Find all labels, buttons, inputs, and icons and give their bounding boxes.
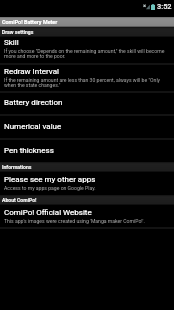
button[interactable]: Pen thickness: [0, 140, 174, 162]
staticText: Skill: [4, 38, 19, 47]
staticText: Draw settings: [2, 29, 34, 35]
staticText: If you choose "Depends on the remaining …: [4, 48, 167, 59]
staticText: 3:52: [157, 2, 172, 11]
button[interactable]: ComiPo! Official Website: [0, 205, 174, 227]
staticText: Access to my apps page on Google Play.: [4, 185, 96, 191]
button[interactable]: Battery direction: [0, 93, 174, 114]
staticText: About ComiPo!: [2, 197, 37, 203]
staticText: Informations: [2, 164, 32, 170]
staticText: ComiPo! Official Website: [4, 208, 92, 217]
staticText: This app's images were created using 'Ma…: [4, 218, 145, 224]
button[interactable]: Please see my other apps: [0, 172, 174, 195]
staticText: Redraw Interval: [4, 67, 59, 76]
button[interactable]: Redraw Interval: [0, 65, 174, 91]
button[interactable]: Numerical value: [0, 116, 174, 138]
staticText: Pen thickness: [4, 146, 54, 155]
staticText: Please see my other apps: [4, 175, 96, 184]
staticText: If the remaining amount are less than 30…: [4, 77, 167, 88]
button[interactable]: Skill: [0, 37, 174, 63]
staticText: Battery direction: [4, 98, 63, 107]
staticText: ComiPo! Battery Meter: [2, 19, 58, 25]
staticText: Numerical value: [4, 122, 62, 131]
